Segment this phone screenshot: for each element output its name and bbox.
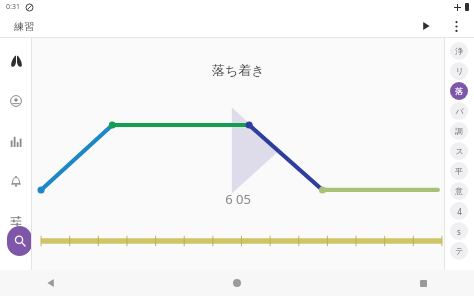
button[interactable]: s: [450, 222, 468, 240]
button[interactable]: Search: [7, 226, 32, 256]
button[interactable]: テ: [450, 242, 468, 260]
button[interactable]: 意: [450, 182, 468, 200]
staticText: ス: [455, 146, 464, 156]
button[interactable]: Meditate: [3, 88, 29, 114]
button[interactable]: Home: [226, 272, 248, 294]
staticText: 練習: [14, 20, 34, 33]
button[interactable]: Recent apps: [412, 272, 434, 294]
staticText: テ: [455, 246, 464, 256]
staticText: 落ち着き: [212, 62, 265, 78]
button[interactable]: リ: [450, 62, 468, 80]
button[interactable]: Back: [40, 272, 62, 294]
staticText: 平: [455, 166, 463, 176]
staticText: リ: [455, 66, 464, 76]
staticText: 4: [457, 206, 462, 217]
staticText: 落: [455, 86, 463, 96]
button[interactable]: Statistics: [3, 128, 29, 154]
button[interactable]: More options: [446, 16, 466, 36]
staticText: 浄: [455, 46, 463, 56]
staticText: 意: [455, 186, 463, 196]
button[interactable]: 浄: [450, 42, 468, 60]
button[interactable]: Play: [416, 16, 436, 36]
button[interactable]: Reminders: [3, 168, 29, 194]
button[interactable]: ス: [450, 142, 468, 160]
button[interactable]: 4: [450, 202, 468, 220]
button[interactable]: Breathe: [3, 48, 29, 74]
staticText: バ: [455, 106, 464, 116]
button[interactable]: 平: [450, 162, 468, 180]
staticText: 6 05: [225, 190, 251, 208]
staticText: s: [457, 226, 461, 237]
button[interactable]: バ: [450, 102, 468, 120]
button[interactable]: Settings: [3, 208, 29, 234]
button[interactable]: 調: [450, 122, 468, 140]
staticText: 調: [455, 126, 463, 136]
button[interactable]: 落: [450, 82, 468, 100]
staticText: 0:31: [6, 2, 20, 12]
